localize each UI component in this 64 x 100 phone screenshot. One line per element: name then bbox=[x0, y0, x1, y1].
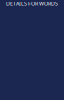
staticText: DETAILS FOR WORDS bbox=[6, 0, 58, 7]
